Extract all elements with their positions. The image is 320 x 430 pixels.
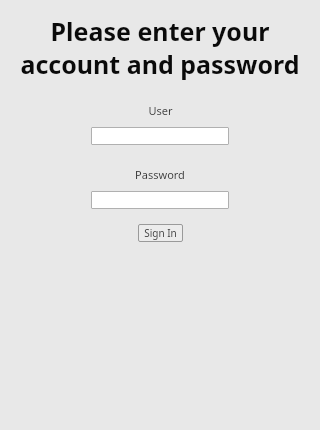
staticText: Please enter your account and password — [6, 14, 314, 81]
staticText: User — [148, 103, 173, 118]
staticText: Password — [135, 167, 185, 182]
button[interactable] — [91, 127, 229, 145]
staticText: Sign In — [144, 226, 177, 240]
button[interactable] — [91, 191, 229, 209]
button[interactable]: Sign In — [138, 224, 183, 242]
